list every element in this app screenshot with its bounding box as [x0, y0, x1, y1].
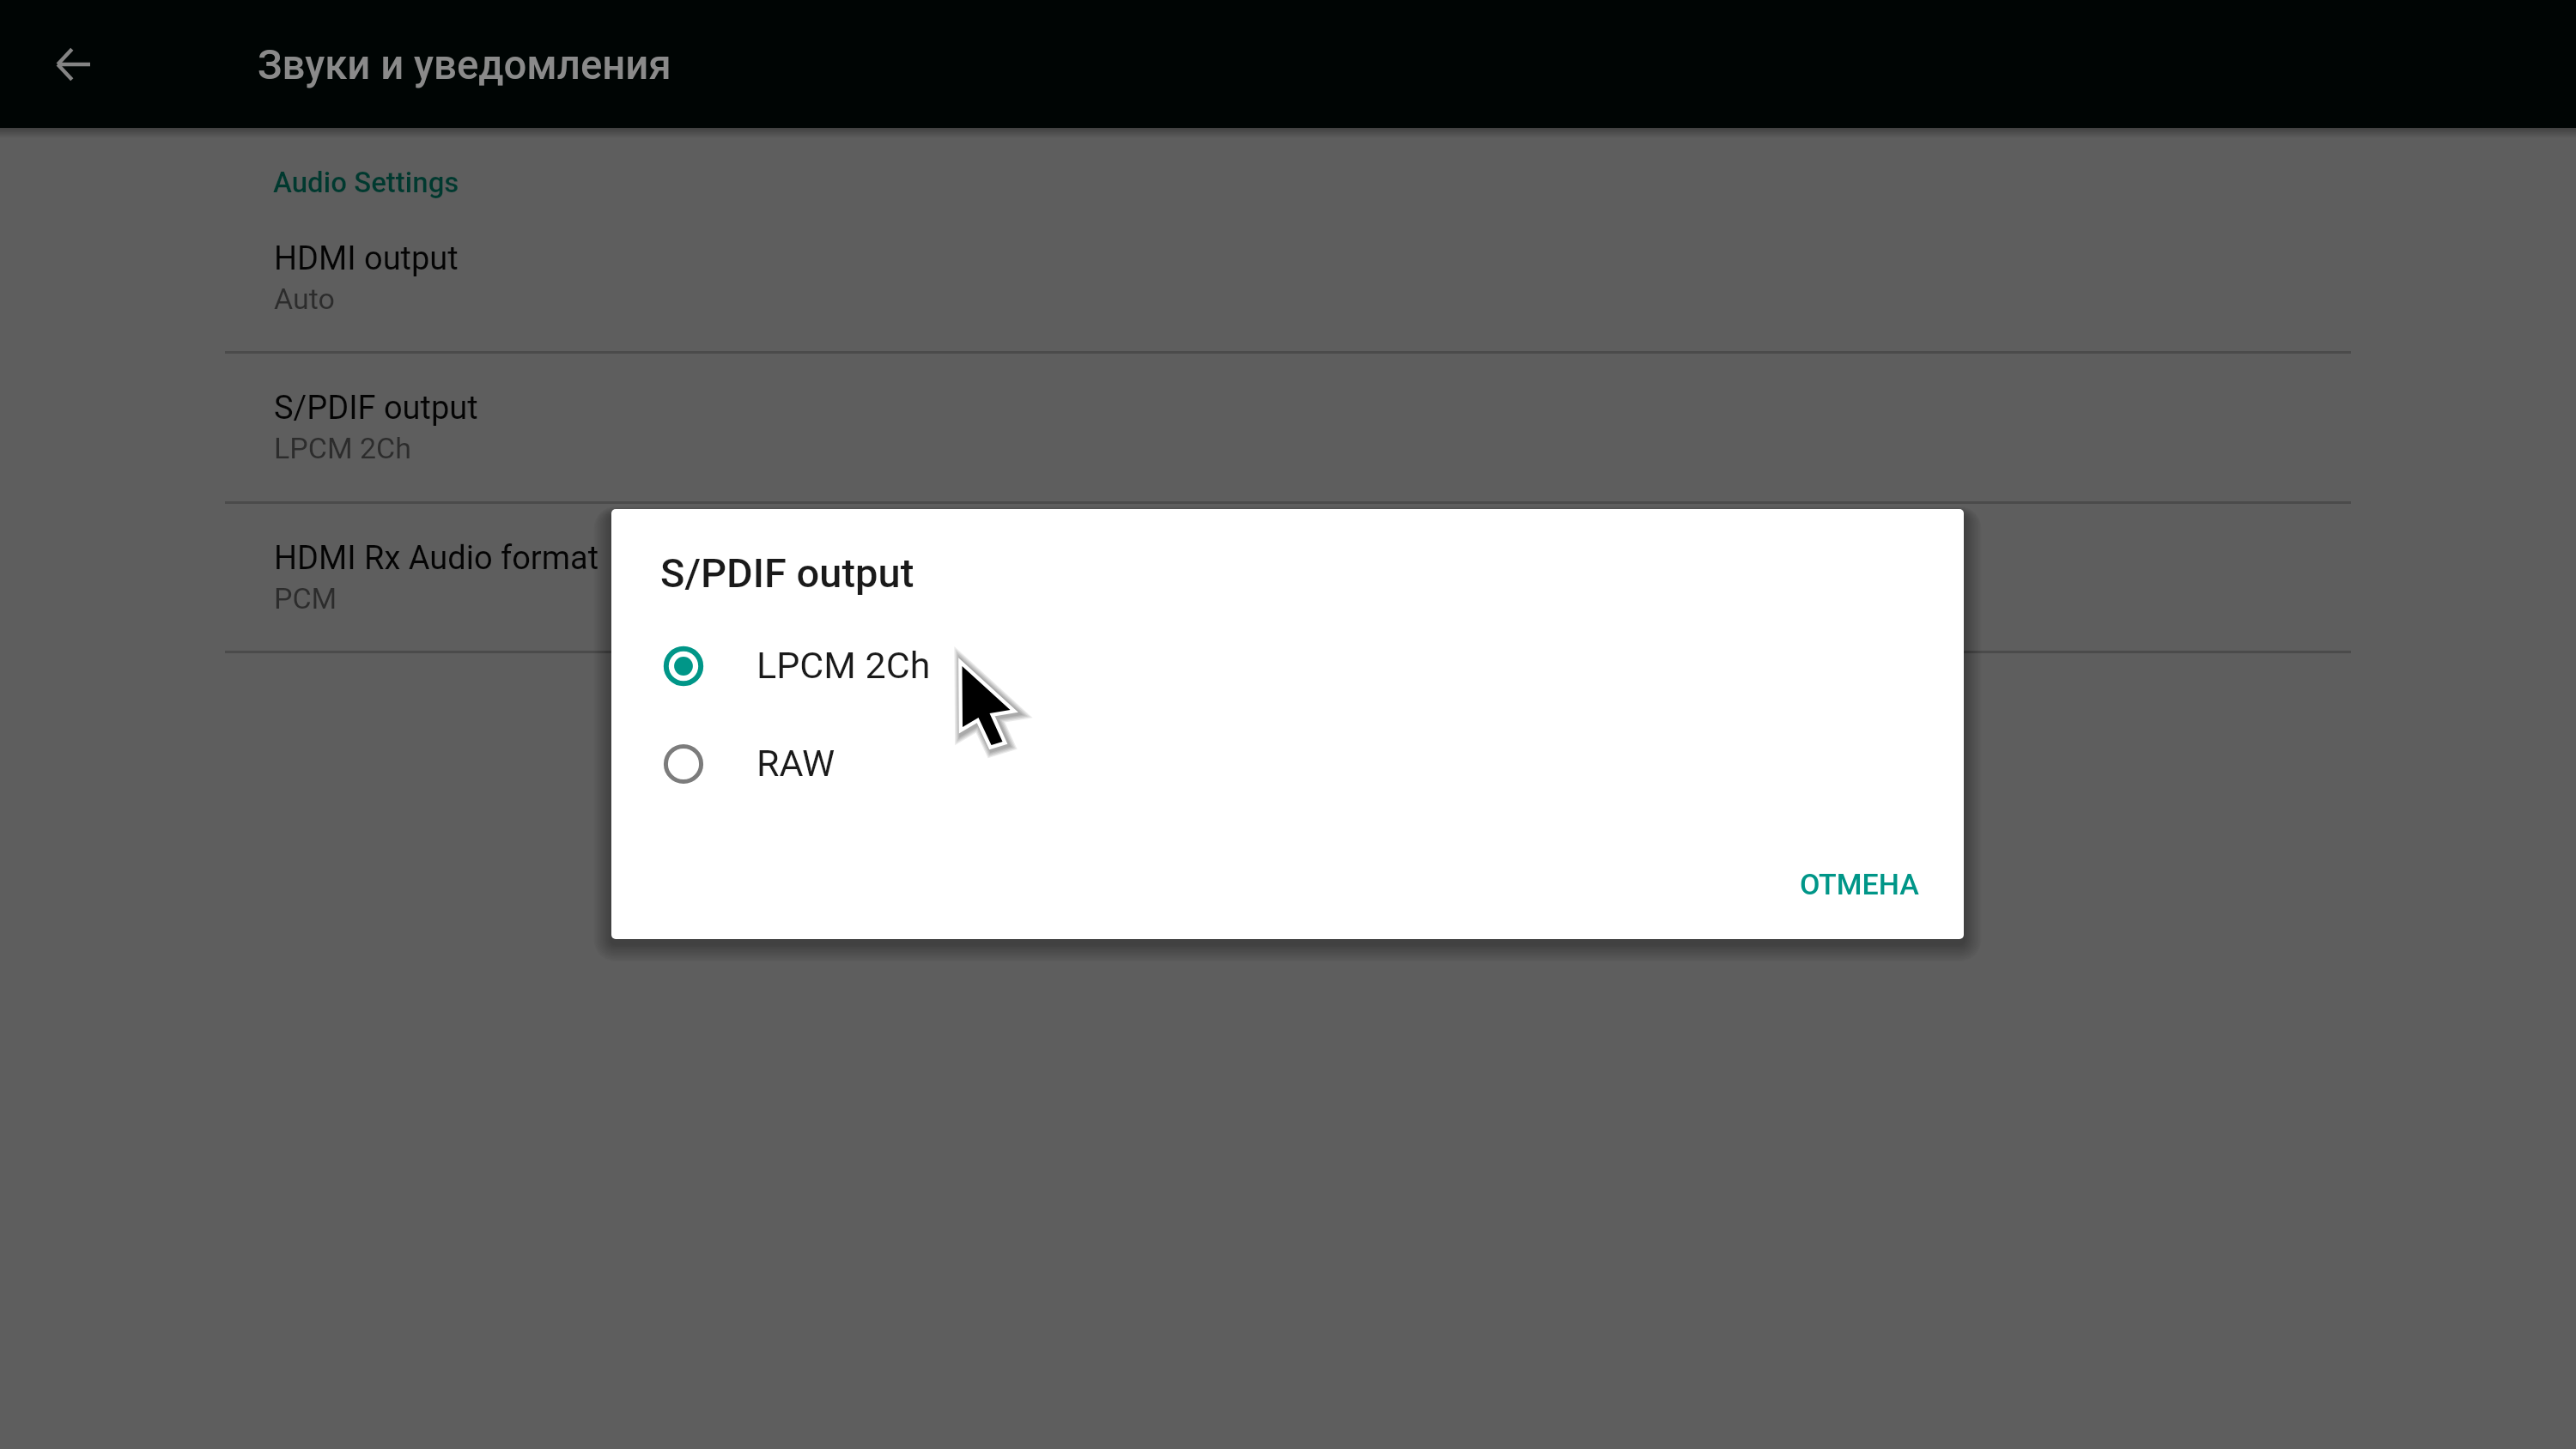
- staticText: Audio Settings: [273, 166, 459, 199]
- staticText: S/PDIF output: [274, 389, 478, 427]
- staticText: LPCM 2Ch: [274, 431, 411, 465]
- staticText: PCM: [274, 581, 337, 615]
- button[interactable]: ОТМЕНА: [1775, 848, 1943, 920]
- staticText: HDMI Rx Audio format: [274, 539, 599, 578]
- button[interactable]: S/PDIF output: [225, 337, 2351, 488]
- staticText: LPCM 2Ch: [756, 644, 931, 687]
- staticText: RAW: [756, 742, 835, 785]
- staticText: Auto: [274, 282, 335, 316]
- button[interactable]: RAW: [611, 713, 1964, 811]
- staticText: ОТМЕНА: [1800, 867, 1919, 901]
- button[interactable]: Back: [34, 26, 112, 103]
- staticText: Звуки и уведомления: [258, 41, 671, 88]
- staticText: HDMI output: [274, 239, 459, 278]
- staticText: S/PDIF output: [660, 549, 914, 597]
- button[interactable]: HDMI Rx Audio format: [225, 488, 2351, 638]
- button[interactable]: HDMI output: [225, 188, 2351, 338]
- button[interactable]: LPCM 2Ch: [611, 615, 1964, 713]
